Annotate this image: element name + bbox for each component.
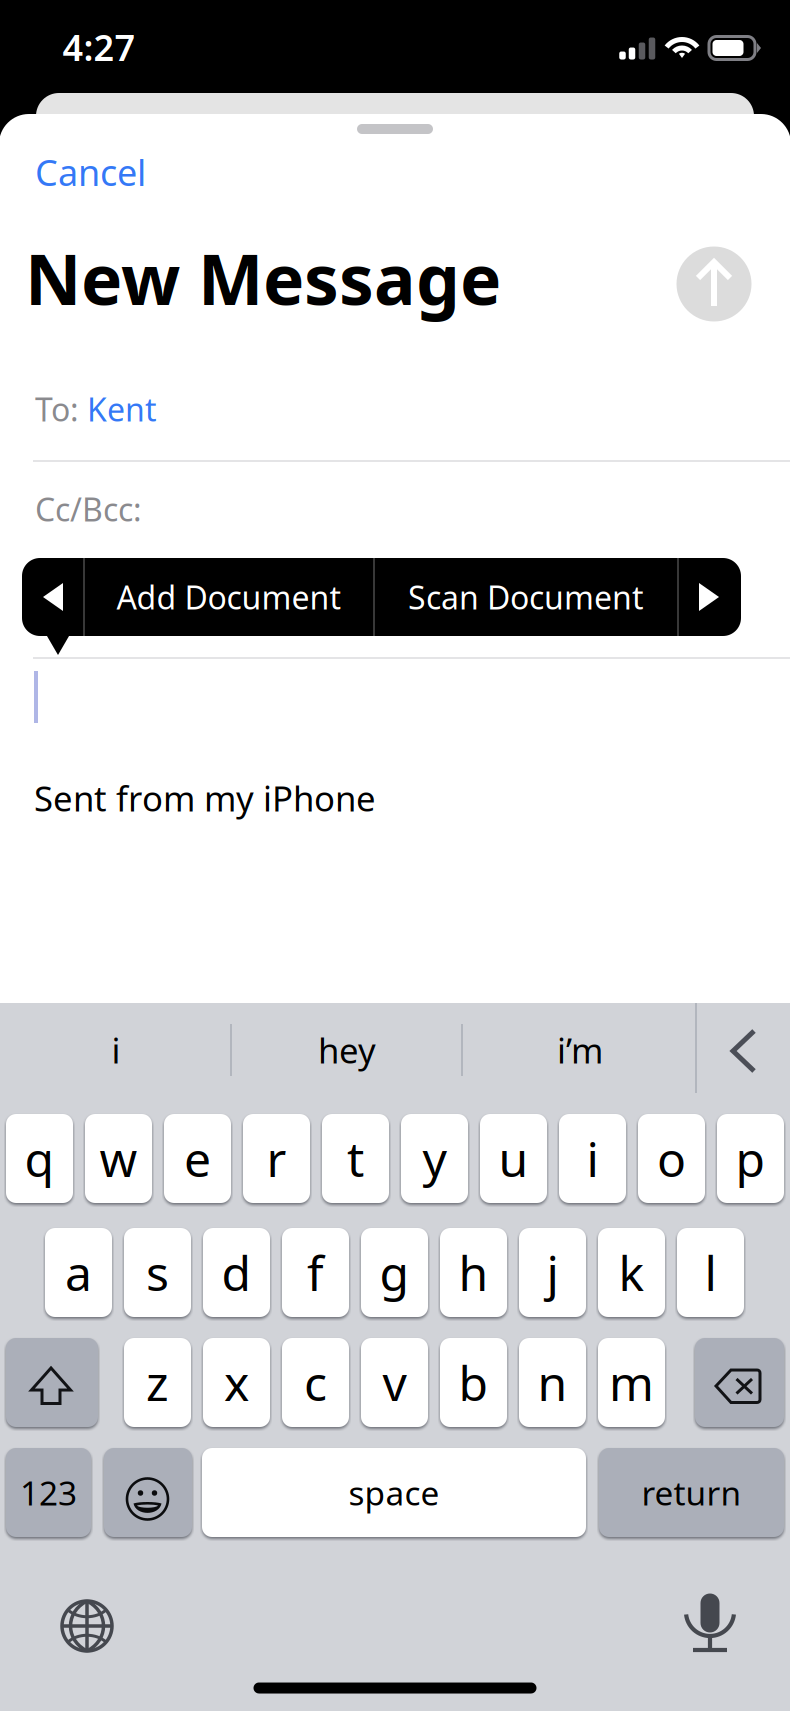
button[interactable]: t	[322, 1114, 389, 1203]
button[interactable]: q	[6, 1114, 73, 1203]
staticText: m	[609, 1351, 654, 1414]
button[interactable]: i’m	[464, 1000, 696, 1100]
button[interactable]: p	[717, 1114, 784, 1203]
button[interactable]: w	[85, 1114, 152, 1203]
button[interactable]: x	[203, 1338, 270, 1427]
staticText: Kent	[79, 388, 157, 430]
button[interactable]: r	[243, 1114, 310, 1203]
staticText: w	[99, 1127, 137, 1190]
staticText: Sent from my iPhone	[34, 775, 376, 821]
button[interactable]: Send	[0, 0, 790, 1711]
staticText: r	[266, 1127, 286, 1190]
staticText: 123	[20, 1470, 77, 1515]
button[interactable]: g	[361, 1228, 428, 1317]
staticText: s	[146, 1241, 169, 1304]
button[interactable]: v	[361, 1338, 428, 1427]
button[interactable]: s	[124, 1228, 191, 1317]
staticText: return	[641, 1470, 741, 1515]
staticText: Cc/Bcc:	[35, 488, 142, 530]
staticText: p	[735, 1127, 765, 1190]
button[interactable]: i	[1, 1000, 231, 1100]
button[interactable]: Next	[0, 0, 790, 1711]
button[interactable]: u	[480, 1114, 547, 1203]
staticText: y	[422, 1127, 446, 1190]
button[interactable]: Add Document	[85, 558, 373, 636]
staticText: t	[347, 1127, 364, 1190]
button[interactable]: Cancel	[35, 146, 155, 198]
button[interactable]: h	[440, 1228, 507, 1317]
button[interactable]: e	[164, 1114, 231, 1203]
button[interactable]: f	[282, 1228, 349, 1317]
staticText: i’m	[557, 1027, 603, 1073]
button[interactable]: z	[124, 1338, 191, 1427]
staticText: space	[348, 1470, 439, 1515]
staticText: k	[618, 1241, 644, 1304]
button[interactable]: Emoji	[104, 1448, 192, 1537]
staticText: To:	[35, 388, 79, 430]
button[interactable]: Dictation	[0, 0, 790, 1711]
button[interactable]: Scan Document	[375, 558, 677, 636]
button[interactable]: b	[440, 1338, 507, 1427]
button[interactable]: Previous	[0, 0, 790, 1711]
button[interactable]: a	[45, 1228, 112, 1317]
button[interactable]: d	[203, 1228, 270, 1317]
staticText: z	[146, 1351, 169, 1414]
staticText: h	[458, 1241, 488, 1304]
button[interactable]: More suggestions	[0, 0, 790, 1711]
staticText: 4:27	[62, 23, 135, 71]
staticText: e	[184, 1127, 211, 1190]
button[interactable]: Delete	[695, 1338, 784, 1427]
button[interactable]: y	[401, 1114, 468, 1203]
button[interactable]: i	[559, 1114, 626, 1203]
staticText: j	[546, 1241, 558, 1304]
staticText: Cancel	[35, 148, 146, 196]
button[interactable]: hey	[233, 1000, 461, 1100]
staticText: i	[586, 1127, 598, 1190]
staticText: n	[537, 1351, 567, 1414]
staticText: Scan Document	[408, 576, 644, 618]
staticText: hey	[318, 1027, 376, 1073]
button[interactable]: Next keyboard	[0, 0, 790, 1711]
button[interactable]: n	[519, 1338, 586, 1427]
button[interactable]: j	[519, 1228, 586, 1317]
staticText: c	[304, 1351, 327, 1414]
staticText: q	[24, 1127, 54, 1190]
button[interactable]: k	[598, 1228, 665, 1317]
button[interactable]: 123	[6, 1448, 91, 1537]
staticText: f	[307, 1241, 324, 1304]
button[interactable]: o	[638, 1114, 705, 1203]
staticText: d	[221, 1241, 251, 1304]
staticText: Add Document	[116, 576, 341, 618]
staticText: b	[458, 1351, 488, 1414]
button[interactable]: l	[677, 1228, 744, 1317]
staticText: u	[498, 1127, 528, 1190]
staticText: l	[704, 1241, 716, 1304]
button[interactable]: space	[202, 1448, 586, 1537]
staticText: New Message	[25, 232, 501, 324]
staticText: g	[379, 1241, 409, 1304]
staticText: o	[657, 1127, 686, 1190]
button[interactable]: c	[282, 1338, 349, 1427]
button[interactable]: return	[599, 1448, 784, 1537]
staticText: v	[382, 1351, 406, 1414]
button[interactable]: m	[598, 1338, 665, 1427]
staticText: x	[224, 1351, 249, 1414]
staticText: i	[111, 1027, 120, 1073]
button[interactable]: Shift	[6, 1338, 98, 1427]
staticText: a	[65, 1241, 92, 1304]
